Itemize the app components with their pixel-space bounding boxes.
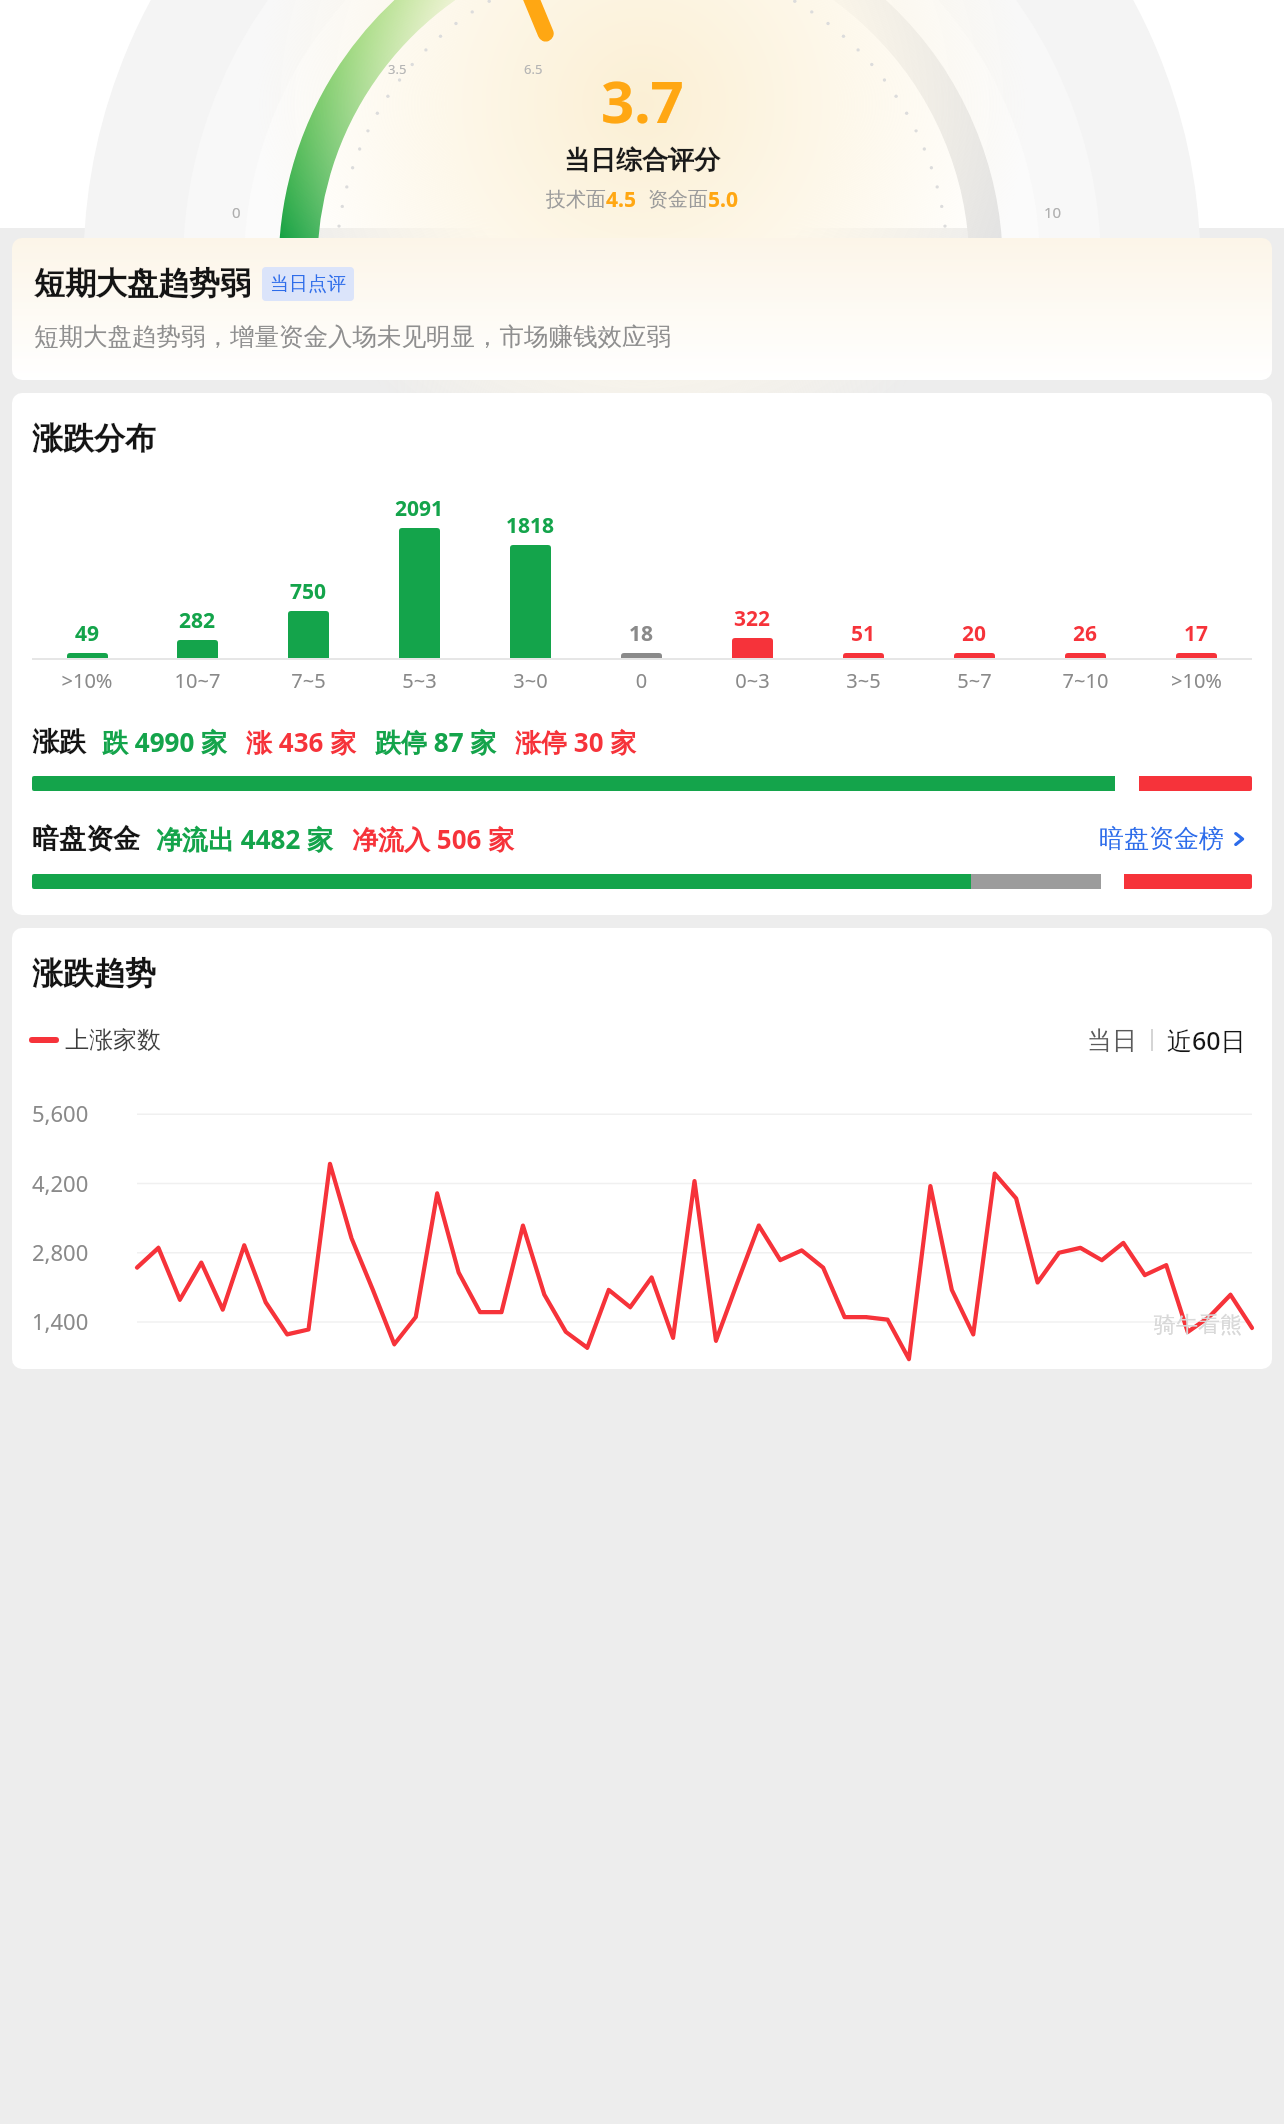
staticText: 短期大盘趋势弱，增量资金入场未见明显，市场赚钱效应弱 [34,321,671,352]
staticText: 4,200 [32,1168,89,1198]
staticText: 技术面 [546,187,606,212]
staticText: 暗盘资金 [32,822,140,856]
staticText: 7~10 [1030,667,1141,694]
staticText: 涨停 30 家 [515,724,637,760]
staticText: 暗盘资金榜 [1099,823,1224,854]
staticText: 1,400 [32,1306,89,1336]
staticText: 51 [851,619,876,648]
staticText: 跌 4990 家 [102,724,228,760]
staticText: 涨跌分布 [32,419,156,458]
staticText: 上涨家数 [65,1025,161,1055]
staticText: 0 [586,667,697,694]
staticText: 0~3 [697,667,808,694]
staticText: 0 [232,202,241,222]
staticText: >10% [32,667,142,694]
staticText: 当日 [1087,1025,1137,1056]
staticText: 资金面 [648,187,708,212]
staticText: 涨跌趋势 [32,954,156,993]
button[interactable]: 暗盘资金榜 [1095,819,1252,858]
staticText: 骑牛看熊 [1154,1311,1242,1339]
staticText: 5~7 [919,667,1030,694]
button[interactable]: 近60日 [1161,1019,1252,1061]
staticText: 3~0 [475,667,586,694]
staticText: 1818 [506,511,555,540]
staticText: 10~7 [142,667,253,694]
staticText: 3.7 [601,61,684,140]
staticText: 短期大盘趋势弱 [34,264,251,303]
staticText: 20 [962,619,987,648]
staticText: 4.5 [606,185,636,214]
staticText: 3~5 [808,667,919,694]
staticText: 7~5 [253,667,364,694]
staticText: 跌停 87 家 [375,724,497,760]
staticText: 2,800 [32,1237,89,1267]
staticText: 17 [1184,619,1209,648]
staticText: 3.5 [388,60,407,78]
staticText: 5,600 [32,1098,89,1128]
staticText: 5~3 [364,667,475,694]
staticText: 49 [75,619,100,648]
staticText: 6.5 [524,60,543,78]
staticText: 18 [629,619,654,648]
staticText: 26 [1073,619,1098,648]
other: 暗盘资金榜 [1230,830,1248,848]
button[interactable]: 短期大盘趋势弱 [12,238,1272,380]
staticText: 282 [179,606,216,635]
staticText: 322 [734,604,771,633]
staticText: 当日点评 [270,272,346,296]
staticText: 750 [290,577,327,606]
button[interactable]: 当日 [1081,1021,1143,1060]
staticText: >10% [1141,667,1252,694]
staticText: 当日综合评分 [564,144,720,177]
staticText: 10 [1044,202,1062,222]
staticText: 净流出 4482 家 [156,821,334,857]
staticText: 2091 [395,494,444,523]
staticText: 净流入 506 家 [352,821,515,857]
staticText: 5.0 [708,185,738,214]
staticText: 涨 436 家 [246,724,357,760]
staticText: 涨跌 [32,725,86,759]
staticText: 近60日 [1167,1023,1246,1057]
